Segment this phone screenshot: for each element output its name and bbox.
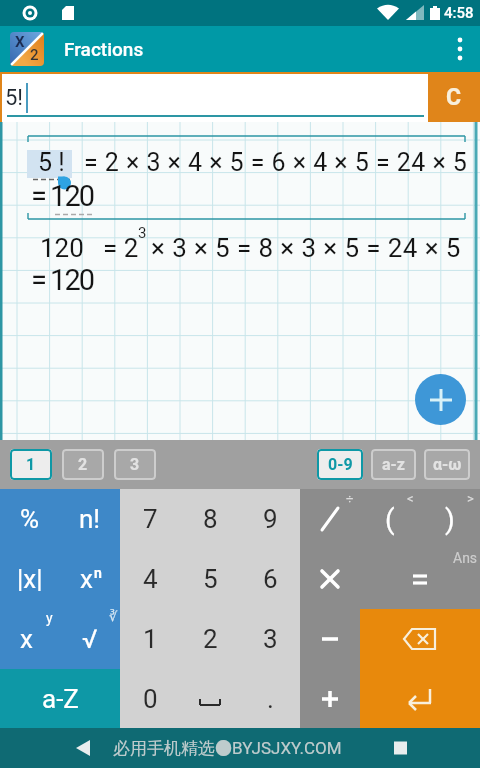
- button[interactable]: 2: [62, 449, 104, 480]
- button[interactable]: |x|: [0, 549, 60, 609]
- staticText: × 3 × 5 = 8 × 3 × 5 = 24 × 5: [151, 233, 461, 263]
- staticText: 2: [30, 46, 39, 64]
- staticText: 3: [138, 224, 147, 242]
- staticText: <: [407, 491, 414, 506]
- staticText: = 2: [103, 233, 139, 263]
- button[interactable]: 9: [240, 489, 300, 549]
- staticText: %: [20, 504, 40, 534]
- staticText: (: [385, 503, 395, 536]
- staticText: 1: [26, 455, 36, 474]
- staticText: ∛: [109, 609, 118, 624]
- staticText: >: [467, 491, 474, 506]
- staticText: 0: [143, 684, 158, 714]
- staticText: 4: [143, 564, 158, 594]
- button[interactable]: Ans: [360, 549, 480, 609]
- staticText: ): [445, 503, 455, 536]
- button[interactable]: ): [420, 489, 480, 549]
- staticText: x: [20, 624, 33, 654]
- staticText: √: [82, 624, 98, 654]
- staticText: 6: [263, 564, 278, 594]
- staticText: 5 !: [38, 148, 65, 177]
- button[interactable]: 3: [114, 449, 156, 480]
- staticText: ÷: [346, 491, 354, 506]
- staticText: 必用手机精选●BYJSJXY.COM: [113, 738, 342, 759]
- staticText: 2: [78, 455, 88, 474]
- staticText: 5!: [5, 85, 24, 111]
- button[interactable]: ÷: [300, 489, 360, 549]
- staticText: X: [15, 33, 25, 51]
- button[interactable]: n!: [60, 489, 120, 549]
- button[interactable]: [300, 609, 360, 669]
- button[interactable]: 8: [180, 489, 240, 549]
- staticText: 7: [143, 504, 158, 534]
- staticText: y: [46, 610, 53, 626]
- staticText: 8: [203, 504, 218, 534]
- button[interactable]: 1: [120, 609, 180, 669]
- button[interactable]: 5: [180, 549, 240, 609]
- button[interactable]: 2: [180, 609, 240, 669]
- staticText: |x|: [17, 564, 43, 594]
- button[interactable]: 7: [120, 489, 180, 549]
- button[interactable]: [440, 29, 480, 69]
- staticText: 3: [263, 624, 278, 654]
- staticText: 5: [203, 564, 218, 594]
- staticText: = 120: [31, 179, 94, 213]
- button[interactable]: 0-9: [317, 449, 363, 480]
- staticText: 3: [130, 455, 140, 474]
- button[interactable]: [180, 669, 240, 728]
- button[interactable]: X: [10, 32, 44, 66]
- staticText: = 2 × 3 × 4 × 5 = 6 × 4 × 5 = 24 × 5: [84, 148, 468, 177]
- button[interactable]: 4: [120, 549, 180, 609]
- staticText: n: [94, 565, 102, 581]
- staticText: 0-9: [328, 455, 353, 474]
- staticText: = 120: [31, 263, 94, 297]
- staticText: 120: [40, 233, 84, 263]
- button[interactable]: 3: [240, 609, 300, 669]
- staticText: x: [80, 564, 93, 594]
- button[interactable]: .: [240, 669, 300, 728]
- staticText: .: [267, 684, 274, 714]
- staticText: 4:58: [444, 4, 474, 22]
- button[interactable]: [300, 669, 360, 728]
- button[interactable]: C: [428, 72, 480, 122]
- staticText: Ans: [453, 550, 478, 566]
- staticText: a-z: [382, 455, 405, 474]
- staticText: 9: [263, 504, 278, 534]
- staticText: a-Z: [42, 684, 79, 714]
- button[interactable]: [360, 669, 480, 728]
- button[interactable]: x: [0, 609, 60, 669]
- button[interactable]: 1: [10, 449, 52, 480]
- button[interactable]: a-z: [371, 449, 416, 480]
- button[interactable]: 6: [240, 549, 300, 609]
- button[interactable]: √: [60, 609, 120, 669]
- button[interactable]: 0: [120, 669, 180, 728]
- button[interactable]: [300, 549, 360, 609]
- button[interactable]: [415, 374, 466, 425]
- staticText: Fractions: [64, 38, 144, 60]
- button[interactable]: α-ω: [424, 449, 470, 480]
- button[interactable]: a-Z: [0, 669, 120, 728]
- staticText: 2: [203, 624, 218, 654]
- staticText: n!: [79, 504, 101, 534]
- button[interactable]: x: [60, 549, 120, 609]
- button[interactable]: %: [0, 489, 60, 549]
- button[interactable]: [360, 609, 480, 669]
- staticText: C: [446, 84, 462, 111]
- button[interactable]: (: [360, 489, 420, 549]
- staticText: α-ω: [433, 455, 462, 474]
- staticText: 1: [143, 624, 158, 654]
